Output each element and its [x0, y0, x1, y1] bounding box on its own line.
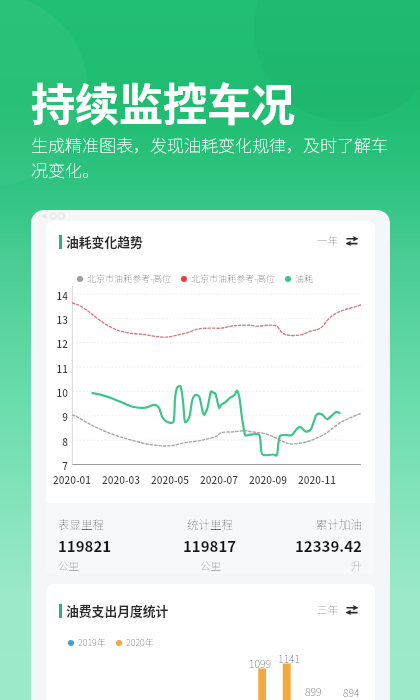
staticText: 12339.42: [295, 535, 362, 557]
staticText: 119821: [58, 535, 112, 557]
other: Switch chart series: [346, 236, 358, 246]
staticText: 10: [53, 385, 68, 399]
staticText: 三年: [317, 602, 339, 617]
staticText: 2019年: [78, 636, 106, 649]
staticText: 899: [305, 684, 322, 699]
staticText: 升: [351, 558, 362, 573]
staticText: 9: [53, 409, 68, 423]
staticText: 1099: [249, 656, 271, 671]
staticText: 2020-03: [100, 472, 142, 486]
staticText: 油费支出月度统计: [66, 601, 169, 620]
staticText: 2020-07: [198, 472, 240, 486]
staticText: 11: [53, 361, 68, 375]
staticText: 13: [53, 312, 68, 326]
staticText: 北京市油耗参考-高位: [87, 272, 171, 285]
staticText: 2020年: [126, 636, 154, 649]
staticText: 12: [53, 336, 68, 350]
staticText: 生成精准图表，发现油耗变化规律，及时了解车况变化。: [31, 132, 399, 182]
staticText: 表显里程: [58, 516, 104, 533]
staticText: 7: [53, 458, 68, 472]
staticText: 2020-01: [51, 472, 93, 486]
staticText: 8: [53, 434, 68, 448]
staticText: 公里: [58, 558, 79, 573]
staticText: 公里: [200, 558, 221, 573]
staticText: 2020-09: [247, 472, 289, 486]
staticText: 119817: [183, 535, 237, 557]
staticText: 油耗: [295, 272, 314, 285]
staticText: 统计里程: [187, 516, 233, 533]
staticText: 北京市油耗参考-高位: [191, 272, 275, 285]
other: Switch chart series: [346, 605, 358, 615]
button[interactable]: 一年: [315, 231, 360, 250]
button[interactable]: 三年: [315, 600, 360, 619]
staticText: 油耗变化趋势: [66, 232, 143, 251]
staticText: 2020-11: [296, 472, 338, 486]
staticText: 894: [343, 685, 360, 700]
staticText: 一年: [317, 233, 339, 248]
staticText: 1141: [278, 651, 300, 666]
staticText: 14: [53, 288, 68, 302]
staticText: 累计加油: [316, 516, 362, 533]
staticText: 持续监控车况: [31, 70, 295, 134]
staticText: 2020-05: [149, 472, 191, 486]
